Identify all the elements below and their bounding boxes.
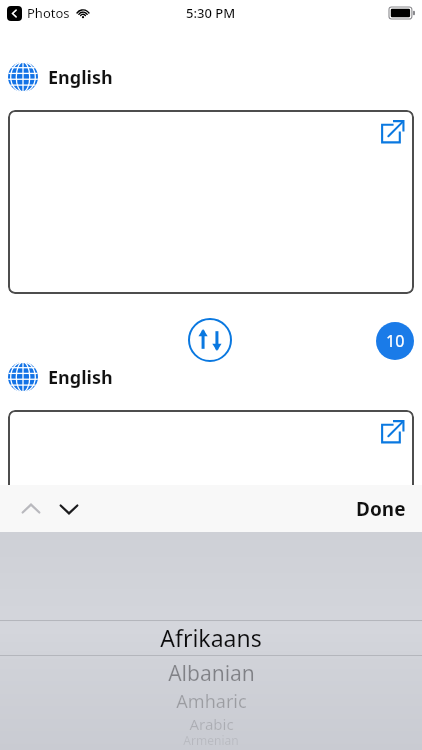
button[interactable]: Amharic bbox=[0, 688, 422, 714]
staticText: 5:30 PM bbox=[186, 4, 236, 22]
button[interactable]: Next field bbox=[50, 490, 88, 528]
button[interactable]: Swap languages bbox=[188, 318, 232, 362]
staticText: Photos bbox=[27, 4, 70, 22]
staticText: Armenian bbox=[183, 732, 239, 748]
button[interactable]: Share bbox=[374, 414, 410, 450]
staticText: 10 bbox=[386, 330, 405, 352]
button[interactable]: Previous field bbox=[12, 490, 50, 528]
staticText: Amharic bbox=[176, 689, 247, 714]
button[interactable]: English bbox=[8, 362, 119, 392]
staticText: Albanian bbox=[168, 659, 255, 688]
button[interactable]: Share bbox=[374, 114, 410, 150]
button[interactable]: Afrikaans bbox=[0, 620, 422, 655]
button[interactable]: Arabic bbox=[0, 712, 422, 735]
button[interactable]: English bbox=[8, 62, 119, 92]
button[interactable]: 10 bbox=[376, 322, 414, 360]
button[interactable]: Done bbox=[340, 488, 422, 530]
button[interactable]: Albanian bbox=[0, 659, 422, 688]
staticText: Arabic bbox=[189, 714, 234, 734]
button[interactable]: Back to Photos bbox=[7, 4, 90, 22]
button[interactable]: Share bbox=[8, 110, 414, 294]
staticText: Done bbox=[356, 496, 406, 522]
staticText: Afrikaans bbox=[160, 622, 262, 653]
button[interactable]: Share bbox=[8, 410, 414, 530]
staticText: English bbox=[48, 65, 113, 90]
staticText: English bbox=[48, 365, 113, 390]
